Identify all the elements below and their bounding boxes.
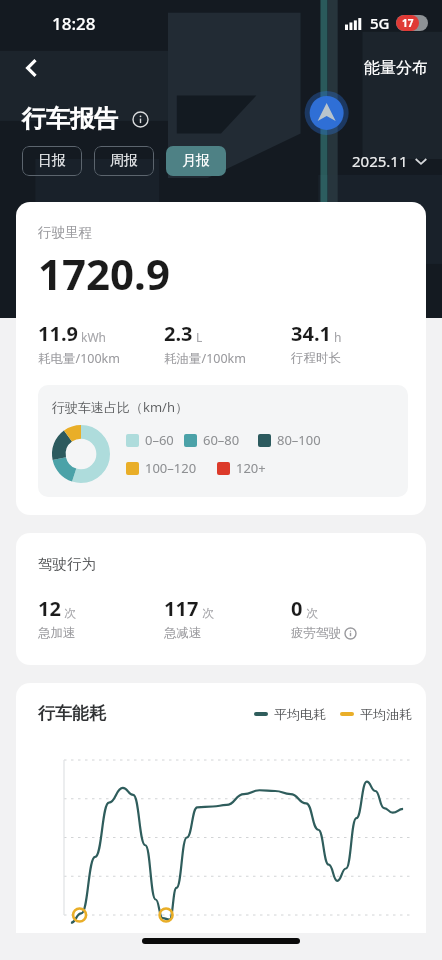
staticText: 急加速 bbox=[38, 625, 76, 641]
staticText: 行驶里程 bbox=[38, 224, 92, 241]
button[interactable]: 日报 bbox=[22, 146, 82, 176]
button[interactable]: Back bbox=[10, 46, 54, 90]
staticText: 2.3 bbox=[164, 320, 193, 347]
staticText: 100–120 bbox=[145, 459, 197, 477]
staticText: 0–60 bbox=[145, 431, 174, 449]
staticText: 驾驶行为 bbox=[38, 555, 96, 573]
staticText: 18:28 bbox=[52, 12, 96, 35]
staticText: 17 bbox=[402, 16, 414, 30]
staticText: 月报 bbox=[182, 152, 210, 170]
button[interactable]: Info bbox=[127, 106, 153, 132]
staticText: 次 bbox=[64, 605, 76, 620]
staticText: 34.1 bbox=[291, 320, 331, 347]
staticText: 次 bbox=[202, 605, 214, 620]
staticText: 120+ bbox=[236, 459, 266, 477]
staticText: h bbox=[334, 329, 342, 345]
staticText: 耗油量/100km bbox=[164, 350, 246, 367]
staticText: 117 bbox=[164, 595, 199, 622]
staticText: 周报 bbox=[110, 152, 138, 170]
staticText: L bbox=[196, 329, 203, 345]
staticText: 行车报告 bbox=[22, 104, 118, 134]
staticText: 11.9 bbox=[38, 320, 78, 347]
staticText: 1720.9 bbox=[38, 245, 170, 302]
staticText: 耗电量/100km bbox=[38, 350, 120, 367]
staticText: 5G bbox=[370, 13, 390, 33]
staticText: 平均电耗 bbox=[274, 706, 326, 722]
staticText: 行程时长 bbox=[291, 350, 341, 366]
staticText: 行驶车速占比（km/h） bbox=[52, 398, 188, 416]
staticText: 2025.11 bbox=[352, 151, 408, 171]
button[interactable]: 周报 bbox=[94, 146, 154, 176]
button[interactable]: 月报 bbox=[166, 146, 226, 176]
staticText: 0 bbox=[291, 595, 303, 622]
staticText: kWh bbox=[81, 329, 106, 345]
staticText: 能量分布 bbox=[364, 58, 428, 78]
button[interactable]: 能量分布 bbox=[364, 58, 428, 78]
staticText: 平均油耗 bbox=[360, 706, 412, 722]
button[interactable]: Info bbox=[343, 626, 357, 640]
button[interactable]: 2025.11 bbox=[352, 151, 428, 171]
staticText: 疲劳驾驶 bbox=[291, 625, 341, 641]
staticText: 80–100 bbox=[277, 431, 321, 449]
staticText: 行车能耗 bbox=[38, 703, 106, 724]
staticText: 次 bbox=[306, 605, 318, 620]
staticText: 日报 bbox=[38, 152, 66, 170]
staticText: 12 bbox=[38, 595, 61, 622]
staticText: 60–80 bbox=[203, 431, 240, 449]
staticText: 急减速 bbox=[164, 625, 202, 641]
